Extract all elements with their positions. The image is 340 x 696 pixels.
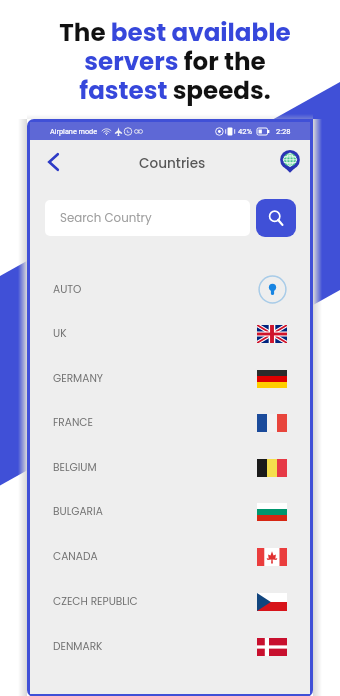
staticText: UK xyxy=(53,326,67,341)
button[interactable]: GERMANY xyxy=(30,356,310,401)
staticText: CANADA xyxy=(53,549,98,564)
staticText: 42% xyxy=(238,127,253,136)
button[interactable]: DENMARK xyxy=(30,624,310,669)
button[interactable]: Search xyxy=(256,199,296,237)
staticText: BELGIUM xyxy=(53,460,97,475)
button[interactable]: Search Country xyxy=(45,200,250,236)
staticText: 2:28 xyxy=(276,127,291,136)
button[interactable]: FRANCE xyxy=(30,400,310,445)
button[interactable]: CZECH REPUBLIC xyxy=(30,579,310,624)
staticText: Countries xyxy=(139,154,206,173)
staticText: DENMARK xyxy=(53,639,103,654)
staticText: GERMANY xyxy=(53,371,104,386)
button[interactable]: AUTO xyxy=(30,267,310,312)
button[interactable]: BELGIUM xyxy=(30,445,310,490)
staticText: AUTO xyxy=(53,282,82,297)
staticText: FRANCE xyxy=(53,415,93,430)
staticText: BULGARIA xyxy=(53,504,103,519)
staticText: Airplane mode xyxy=(50,127,98,136)
button[interactable]: CANADA xyxy=(30,534,310,579)
button[interactable]: Back xyxy=(37,147,69,177)
staticText: CZECH REPUBLIC xyxy=(53,594,138,609)
staticText: Search Country xyxy=(60,210,152,227)
staticText: The best available servers for the faste… xyxy=(10,15,340,108)
button[interactable]: UK xyxy=(30,311,310,356)
button[interactable]: Change server location xyxy=(279,149,301,175)
button[interactable]: BULGARIA xyxy=(30,489,310,534)
